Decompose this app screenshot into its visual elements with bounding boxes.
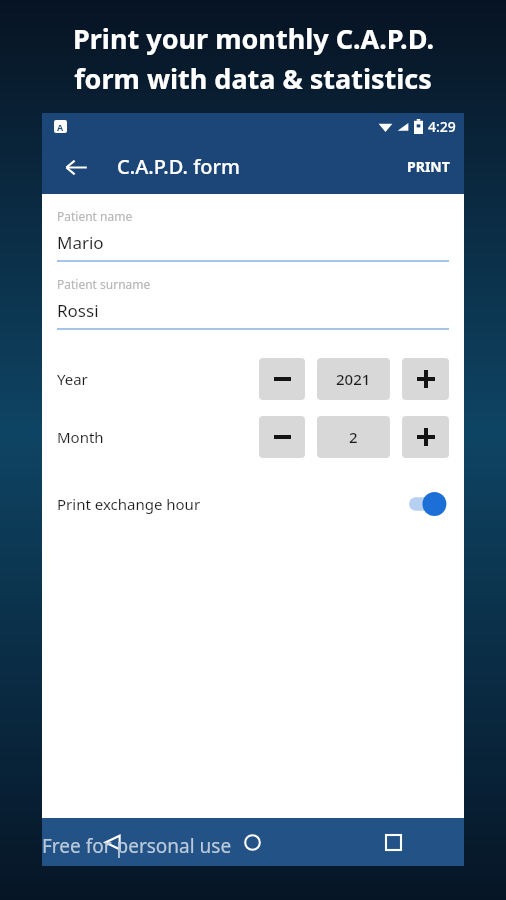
staticText: Free for personal use bbox=[42, 833, 232, 859]
staticText: Patient surname bbox=[57, 276, 151, 292]
staticText: PRINT bbox=[407, 157, 450, 176]
button[interactable]: Increase Year bbox=[402, 358, 449, 400]
staticText: Year bbox=[57, 369, 88, 389]
staticText: form with data & statistics bbox=[74, 60, 432, 97]
staticText: 4:29 bbox=[428, 117, 456, 136]
staticText: 2021 bbox=[336, 369, 371, 389]
button[interactable]: Decrease Month bbox=[259, 416, 305, 458]
button[interactable]: Recent apps bbox=[323, 818, 464, 866]
staticText: A bbox=[57, 121, 64, 133]
button[interactable]: Increase Month bbox=[402, 416, 449, 458]
button[interactable]: Patient surname bbox=[42, 276, 464, 330]
staticText: Print exchange hour bbox=[57, 494, 201, 514]
staticText: C.A.P.D. form bbox=[117, 153, 240, 180]
staticText: Mario bbox=[57, 231, 104, 254]
staticText: Patient name bbox=[57, 208, 133, 224]
staticText: Print your monthly C.A.P.D. bbox=[73, 20, 434, 57]
button[interactable]: Decrease Year bbox=[259, 358, 305, 400]
button[interactable]: PRINT bbox=[393, 147, 464, 186]
button[interactable]: Home bbox=[182, 818, 323, 866]
staticText: Month bbox=[57, 427, 104, 447]
button[interactable]: Back bbox=[56, 147, 96, 187]
staticText: 2 bbox=[349, 427, 358, 447]
staticText: Rossi bbox=[57, 299, 99, 322]
button[interactable]: Back bbox=[42, 818, 182, 866]
button[interactable]: 2 bbox=[317, 416, 390, 458]
button[interactable]: 2021 bbox=[317, 358, 390, 400]
button[interactable]: Print exchange hour bbox=[42, 482, 464, 526]
other: Toggle Print exchange hour bbox=[409, 491, 449, 517]
button[interactable]: Patient name bbox=[42, 208, 464, 262]
